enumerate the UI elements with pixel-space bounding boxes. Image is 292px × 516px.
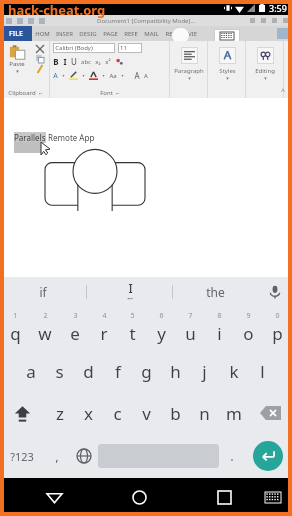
staticText: y [157,322,166,345]
staticText: MAIL [144,30,159,38]
staticText: x₂ [95,58,101,66]
staticText: I [128,280,133,296]
button[interactable]: 11 [118,43,142,53]
button[interactable]: l [248,350,277,392]
button[interactable]: , [44,434,69,478]
staticText: REVIE [165,30,182,38]
staticText: Parallels [14,132,46,143]
button[interactable]: s [45,350,74,392]
button[interactable]: g [132,350,161,392]
staticText: I [63,56,67,67]
button[interactable]: j [190,350,219,392]
button[interactable]: h [161,350,190,392]
staticText: INSER [56,30,73,38]
staticText: VIE [188,30,197,38]
staticText: REFE [124,30,138,38]
button[interactable]: Recent apps [205,478,243,516]
button[interactable]: INSER [56,26,73,41]
staticText: n [199,402,210,425]
button[interactable]: 0 [263,306,292,350]
button[interactable]: v [132,392,161,434]
button[interactable]: if [0,277,86,306]
button[interactable]: REVIE [165,26,182,41]
button[interactable]: . [219,434,244,478]
button[interactable]: Hide keyboard [35,478,73,516]
button[interactable]: DESIG [79,26,97,41]
staticText: if [39,284,47,300]
staticText: the [206,284,225,300]
staticText: Calibri (Body) [55,44,93,52]
staticText: 11 [120,44,127,52]
button[interactable]: VIE [188,26,197,41]
staticText: A [144,72,148,80]
button[interactable]: m [219,392,248,434]
button[interactable]: FILE [0,26,32,41]
staticText: i [217,322,222,345]
button[interactable]: ?123 [0,434,44,478]
button[interactable]: 6 [147,306,176,350]
button[interactable]: the [173,277,258,306]
button[interactable]: Switch keyboard [258,482,288,512]
button[interactable]: MAIL [144,26,159,41]
staticText: PAGE [103,30,118,38]
staticText: ▾ [188,75,191,81]
staticText: e [70,322,80,345]
staticText: t [129,322,136,345]
staticText: a [26,360,36,383]
staticText: z [56,402,64,425]
button[interactable]: 5 [118,306,147,350]
button[interactable]: b [161,392,190,434]
staticText: q [10,322,21,345]
button[interactable]: Styles [208,41,246,98]
button[interactable]: Editing [246,41,284,98]
staticText: . [230,447,234,465]
button[interactable]: x [74,392,103,434]
button[interactable]: Change keyboard language [69,434,98,478]
staticText: ▾ [264,75,267,81]
button[interactable]: 9 [234,306,263,350]
button[interactable]: I [87,277,172,306]
staticText: 9 [246,311,251,321]
staticText: g [141,360,152,383]
button[interactable]: 1 [0,306,30,350]
button[interactable]: Voice input [258,277,292,306]
staticText: FILE [9,29,23,39]
staticText: b [170,402,181,425]
staticText: ▾ [226,75,229,81]
button[interactable]: k [219,350,248,392]
button[interactable]: Shift [0,392,45,434]
button[interactable]: HOM [35,26,50,41]
button[interactable]: n [190,392,219,434]
staticText: Document1 [Compatibility Mode]... [97,17,196,25]
button[interactable]: PAGE [103,26,118,41]
button[interactable]: 8 [205,306,234,350]
button[interactable]: Paragraph [170,41,208,98]
button[interactable]: f [103,350,132,392]
button[interactable]: Backspace [248,392,292,434]
staticText: HOM [35,30,50,38]
button[interactable]: z [45,392,74,434]
staticText: ▾ [62,73,65,78]
staticText: h [170,360,181,383]
button[interactable]: Home [120,478,158,516]
staticText: f [115,360,121,383]
staticText: o [243,322,254,345]
button[interactable]: 7 [176,306,205,350]
button[interactable]: Enter [253,441,283,471]
staticText: 5 [130,311,135,321]
button[interactable]: a [16,350,45,392]
staticText: 7 [188,311,193,321]
button[interactable]: 2 [30,306,60,350]
button[interactable]: 4 [89,306,118,350]
button[interactable]: c [103,392,132,434]
staticText: ••• [127,296,133,303]
button[interactable]: Calibri (Body) [53,43,115,53]
button[interactable]: REFE [124,26,138,41]
button[interactable]: d [74,350,103,392]
staticText: Styles [219,67,236,75]
staticText: ▾ [102,73,105,78]
button[interactable]: 3 [60,306,89,350]
staticText: k [229,360,239,383]
